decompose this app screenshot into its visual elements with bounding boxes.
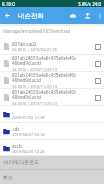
staticText: 내손전화	[18, 12, 44, 20]
button[interactable]: Select	[91, 38, 104, 55]
staticText: 34.00 B | 2019/11/20 13	[12, 101, 58, 106]
button[interactable]: ..	[0, 106, 104, 123]
button[interactable]: 취소	[0, 170, 104, 184]
staticText: 801ab24653a4a6c435e6eb40c48bed9d.acid	[12, 89, 78, 101]
button[interactable]: Upload	[80, 8, 95, 23]
button[interactable]: accb	[0, 140, 104, 156]
staticText: 8.18:0	[2, 1, 15, 7]
staticText: 3.9K/s 24:0	[78, 1, 102, 7]
button[interactable]: 807ab.cad2	[0, 38, 104, 55]
button[interactable]: Cloud	[65, 8, 80, 23]
staticText: accb	[12, 143, 22, 149]
staticText: 2019/04/27 22:14	[12, 132, 45, 137]
staticText: .ids	[12, 126, 20, 132]
staticText: 여기에 다운로드	[3, 159, 40, 166]
staticText: 2019/04/29 12:24	[12, 149, 45, 154]
button[interactable]: More options	[95, 7, 104, 24]
staticText: 2020/01/02 17:28	[12, 115, 45, 120]
button[interactable]: Select	[91, 89, 104, 106]
button[interactable]: Select	[91, 55, 104, 72]
button[interactable]: 801ab24653a4a6c435e6eb40c48bed9d.acid	[0, 55, 104, 72]
staticText: 32.80 B | 2019/03/21 06	[12, 47, 58, 52]
button[interactable]: Back	[0, 8, 15, 23]
button[interactable]: Select	[91, 72, 104, 89]
staticText: 34.00 B | 2019/11/20 13	[12, 84, 58, 89]
button[interactable]: 801ab24653a4a6c435e6eb40c48bed9d.acid	[0, 89, 104, 106]
button[interactable]: 여기에 다운로드	[0, 156, 104, 169]
staticText: 807ab.cad2	[12, 41, 37, 47]
staticText: ..	[12, 109, 15, 115]
staticText: 801ab24653a4a6c435e6eb40c48bed9d.acid	[12, 72, 78, 84]
button[interactable]: .ids	[0, 123, 104, 140]
button[interactable]: 801ab24653a4a6c435e6eb40c48bed9d.acid	[0, 72, 104, 89]
staticText: 801ab24653a4a6c435e6eb40c48bed9d.acid	[12, 55, 78, 67]
staticText: /storage/emulated/0/Download	[2, 28, 71, 34]
staticText: 34.00 B | 2019/11/20 13	[12, 67, 58, 72]
staticText: 취소	[3, 174, 13, 180]
